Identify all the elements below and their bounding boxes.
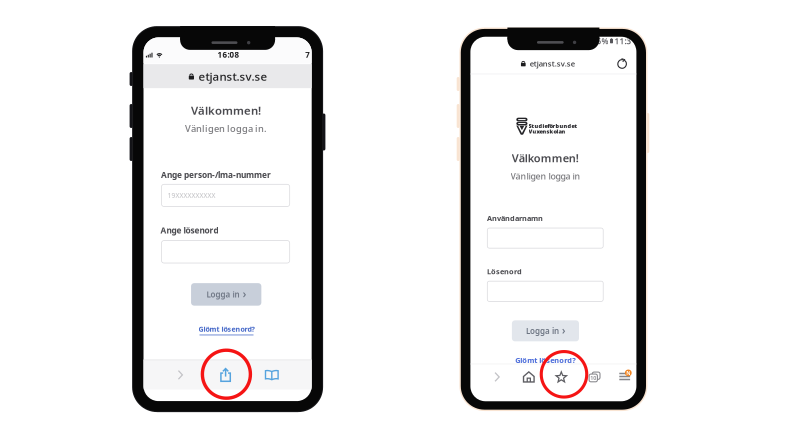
staticText: 11:3 <box>615 36 632 46</box>
button[interactable]: Menu <box>619 370 631 382</box>
staticText: etjanst.sv.se <box>530 58 575 69</box>
button[interactable]: Share <box>218 368 233 382</box>
button[interactable]: Home <box>523 371 535 383</box>
button[interactable]: Glömt lösenord? <box>515 355 575 365</box>
staticText: Användarnamn <box>487 213 543 223</box>
button[interactable]: Reload <box>617 58 627 68</box>
staticText: Logga in <box>207 289 240 300</box>
staticText: N <box>626 369 630 376</box>
staticText: Välkommen! <box>512 151 579 166</box>
staticText: Glömt lösenord? <box>198 324 254 334</box>
staticText: Logga in <box>526 325 559 336</box>
button[interactable]: etjanst.sv.se <box>144 64 312 88</box>
staticText: etjanst.sv.se <box>198 69 267 84</box>
staticText: 7 <box>305 49 310 60</box>
button[interactable]: Tabs <box>588 371 601 383</box>
staticText: Vänligen logga in. <box>185 122 267 135</box>
staticText: 19XXXXXXXXXX <box>167 191 215 200</box>
staticText: Välkommen! <box>191 103 261 118</box>
staticText: Ange person-/lma-nummer <box>161 169 271 180</box>
button[interactable]: Bookmarks <box>555 371 567 383</box>
button[interactable]: etjanst.sv.se <box>520 58 575 69</box>
staticText: 10 <box>590 374 596 381</box>
button[interactable]: Logga in <box>191 283 261 306</box>
staticText: Lösenord <box>487 266 522 276</box>
button[interactable]: Forward <box>494 372 500 382</box>
staticText: Vänligen logga in <box>511 170 581 182</box>
staticText: Vuxenskolan <box>528 128 565 135</box>
staticText: 16:08 <box>218 49 240 60</box>
staticText: Studieförbundet <box>528 122 577 130</box>
button[interactable]: Logga in <box>512 320 579 341</box>
button[interactable]: Tabs <box>311 368 324 381</box>
staticText: Ange lösenord <box>160 225 218 236</box>
button[interactable]: Forward <box>178 370 183 380</box>
staticText: Glömt lösenord? <box>515 355 575 365</box>
button[interactable]: Glömt lösenord? <box>198 324 254 335</box>
button[interactable]: Bookmarks <box>265 368 279 382</box>
staticText: 96% <box>591 36 608 46</box>
